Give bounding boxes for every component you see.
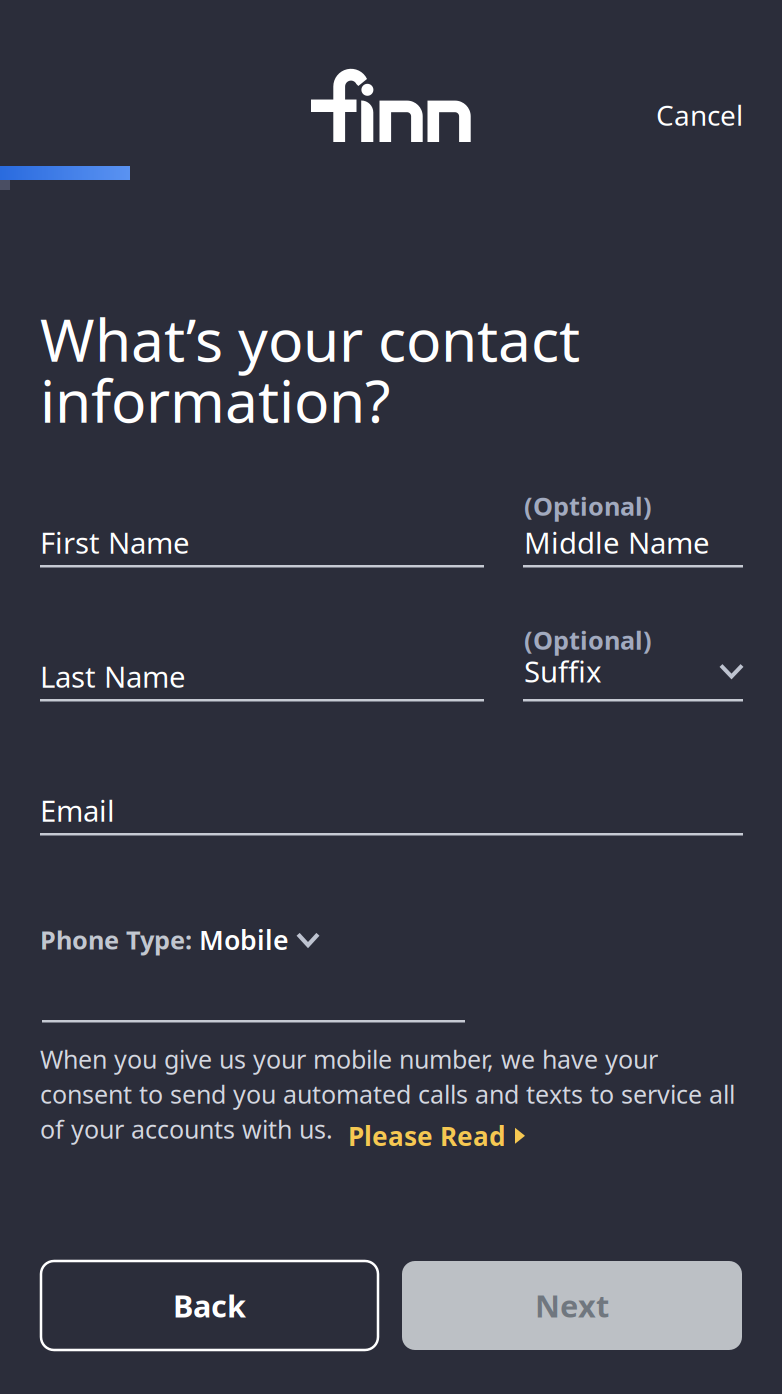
staticText: Mobile — [199, 922, 289, 957]
staticText: Last Name — [40, 657, 186, 696]
staticText: Cancel — [656, 96, 743, 134]
staticText: Email — [40, 791, 115, 830]
staticText: (Optional) — [524, 489, 652, 523]
staticText: What’s your contact — [40, 300, 580, 378]
staticText: Please Read — [348, 1118, 506, 1154]
staticText: Back — [173, 1285, 246, 1326]
staticText: Middle Name — [524, 523, 710, 562]
staticText: consent to send you automated calls and … — [40, 1077, 735, 1111]
button[interactable]: Next — [402, 1261, 742, 1350]
button[interactable]: Please Read — [348, 1118, 525, 1154]
button[interactable]: Back — [41, 1261, 378, 1350]
button[interactable]: Cancel — [613, 85, 743, 145]
staticText: When you give us your mobile number, we … — [40, 1042, 658, 1076]
staticText: Phone Type: — [40, 923, 192, 956]
staticText: information? — [40, 361, 390, 439]
staticText: Next — [535, 1285, 609, 1326]
staticText: (Optional) — [524, 623, 652, 657]
staticText: First Name — [40, 523, 190, 562]
staticText: Suffix — [524, 651, 602, 690]
button[interactable]: Suffix — [524, 653, 744, 689]
staticText: of your accounts with us. — [40, 1112, 333, 1146]
button[interactable]: Phone Type: — [40, 922, 320, 957]
